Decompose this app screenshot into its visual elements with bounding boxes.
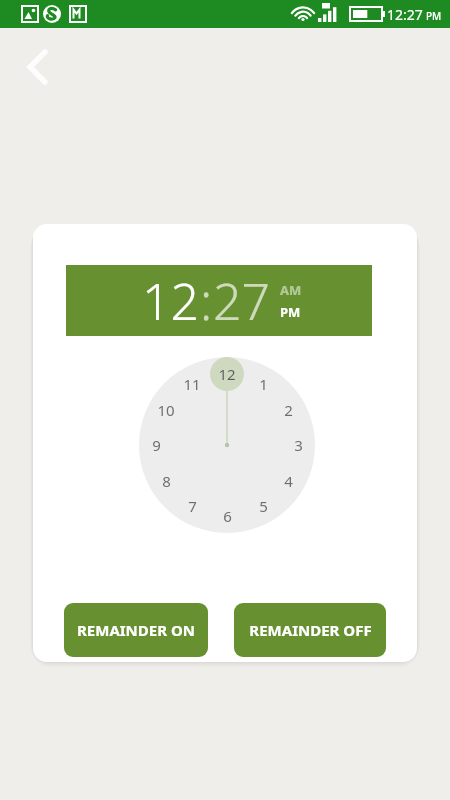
staticText: 12:27 [387,5,423,24]
staticText: 3 [294,435,303,455]
staticText: 11 [183,374,201,394]
staticText: 2 [284,400,293,420]
staticText: PM [426,9,442,23]
button[interactable]: Clock dial, 12 o'clock selected [139,357,315,533]
staticText: 7 [188,496,197,516]
button[interactable]: REMAINDER ON [64,603,208,657]
button[interactable]: PM [280,303,301,321]
button[interactable]: 27 [213,267,271,335]
staticText: : [200,267,213,335]
staticText: 5 [259,496,268,516]
staticText: 8 [162,471,171,491]
button[interactable]: REMAINDER OFF [234,603,386,657]
button[interactable]: Back [10,40,64,94]
staticText: 4 [284,471,293,491]
staticText: 1 [259,374,268,394]
button[interactable]: 12 [142,267,200,335]
staticText: REMAINDER OFF [249,620,372,640]
staticText: REMAINDER ON [77,620,195,640]
staticText: 6 [223,506,232,526]
staticText: 9 [152,435,161,455]
staticText: 12 [218,364,236,384]
staticText: 10 [157,400,175,420]
button[interactable]: AM [280,281,302,299]
